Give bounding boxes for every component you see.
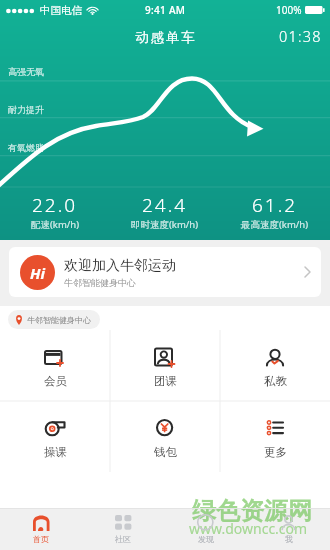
staticText: 配速(km/h) [31,218,80,231]
staticText: 更多 [264,445,287,459]
staticText: 中国电信 [40,4,82,17]
staticText: 动感单车 [134,29,196,46]
button[interactable]: 私教 [220,330,330,401]
button[interactable]: 牛邻智能健身中心 [15,310,91,329]
staticText: 发现 [198,534,214,544]
button[interactable]: 我 [247,508,330,550]
staticText: Hi [30,263,46,283]
staticText: 操课 [44,445,67,459]
button[interactable]: 更多 [220,401,330,472]
staticText: 即时速度(km/h) [131,218,199,231]
staticText: 高强无氧 [8,66,44,77]
button[interactable]: 发现 [164,508,247,550]
staticText: 22.0 [32,192,78,218]
button[interactable]: 会员 [0,330,110,401]
staticText: www.downcc.com [189,519,308,538]
staticText: 团课 [154,374,177,388]
button[interactable]: 首页 [0,508,82,550]
other: 社区 [115,515,132,530]
staticText: 01:38 [279,26,322,46]
staticText: 耐力提升 [8,104,44,115]
button[interactable]: Hi [9,247,321,297]
button[interactable]: 钱包 [110,401,220,472]
button[interactable]: 操课 [0,401,110,472]
staticText: 私教 [264,374,287,388]
staticText: 钱包 [154,445,177,459]
staticText: 有氧燃脂 [8,142,44,153]
button[interactable]: 团课 [110,330,220,401]
staticText: 61.2 [252,192,298,218]
other: 我 [281,515,297,530]
staticText: 我 [285,534,293,544]
other: 首页 [33,515,50,531]
staticText: 最高速度(km/h) [241,218,309,231]
staticText: 100% [276,3,302,17]
staticText: 社区 [115,534,131,544]
staticText: 绿色资源网 [192,496,312,526]
staticText: 牛邻智能健身中心 [27,315,91,325]
staticText: 24.4 [142,192,188,218]
staticText: 9:41 AM [145,3,186,17]
staticText: 首页 [33,534,49,544]
other: 发现 [197,514,214,531]
staticText: 会员 [44,374,67,388]
staticText: 欢迎加入牛邻运动 [64,257,176,275]
staticText: 牛邻智能健身中心 [64,277,136,288]
button[interactable]: 社区 [82,508,164,550]
